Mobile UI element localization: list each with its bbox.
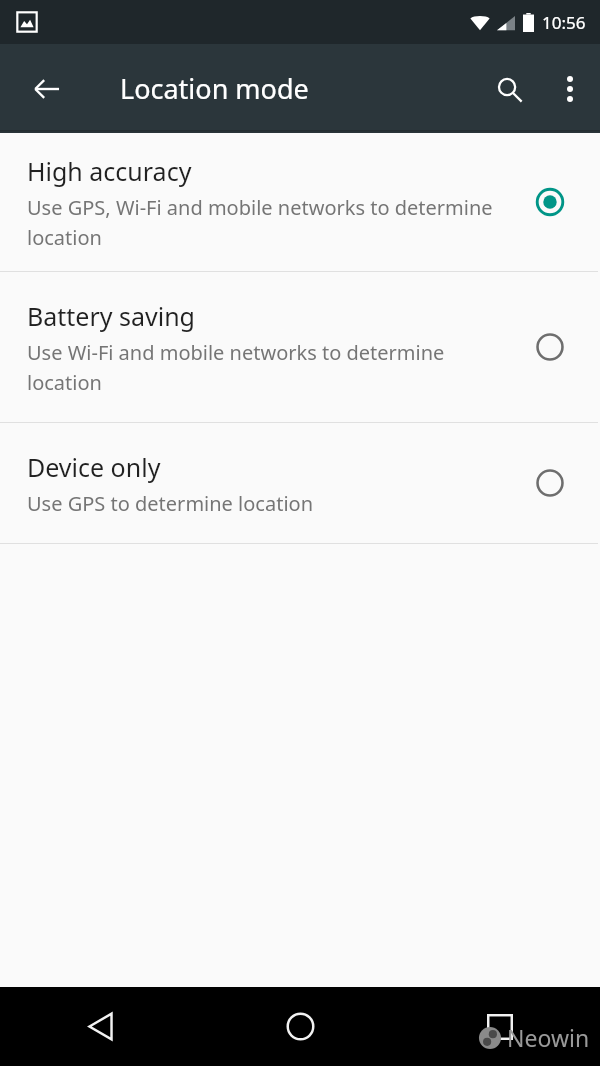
staticText: Battery saving [27, 299, 195, 333]
button[interactable]: More options [540, 59, 600, 119]
staticText: Use Wi-Fi and mobile networks to determi… [27, 339, 504, 396]
button[interactable]: Recent apps [400, 987, 600, 1066]
staticText: Location mode [120, 70, 309, 107]
button[interactable]: High accuracy [0, 133, 600, 271]
staticText: High accuracy [27, 154, 192, 188]
staticText: Device only [27, 450, 161, 484]
staticText: Neowin [507, 1022, 590, 1053]
staticText: Use GPS, Wi-Fi and mobile networks to de… [27, 194, 504, 251]
button[interactable]: Back [17, 59, 77, 119]
button[interactable]: Device only [0, 423, 600, 543]
button[interactable]: Home [200, 987, 400, 1066]
button[interactable]: Search [478, 58, 540, 120]
button[interactable]: Battery saving [0, 272, 600, 422]
button[interactable]: Back [0, 987, 200, 1066]
staticText: Use GPS to determine location [27, 490, 313, 517]
staticText: 10:56 [542, 11, 586, 34]
